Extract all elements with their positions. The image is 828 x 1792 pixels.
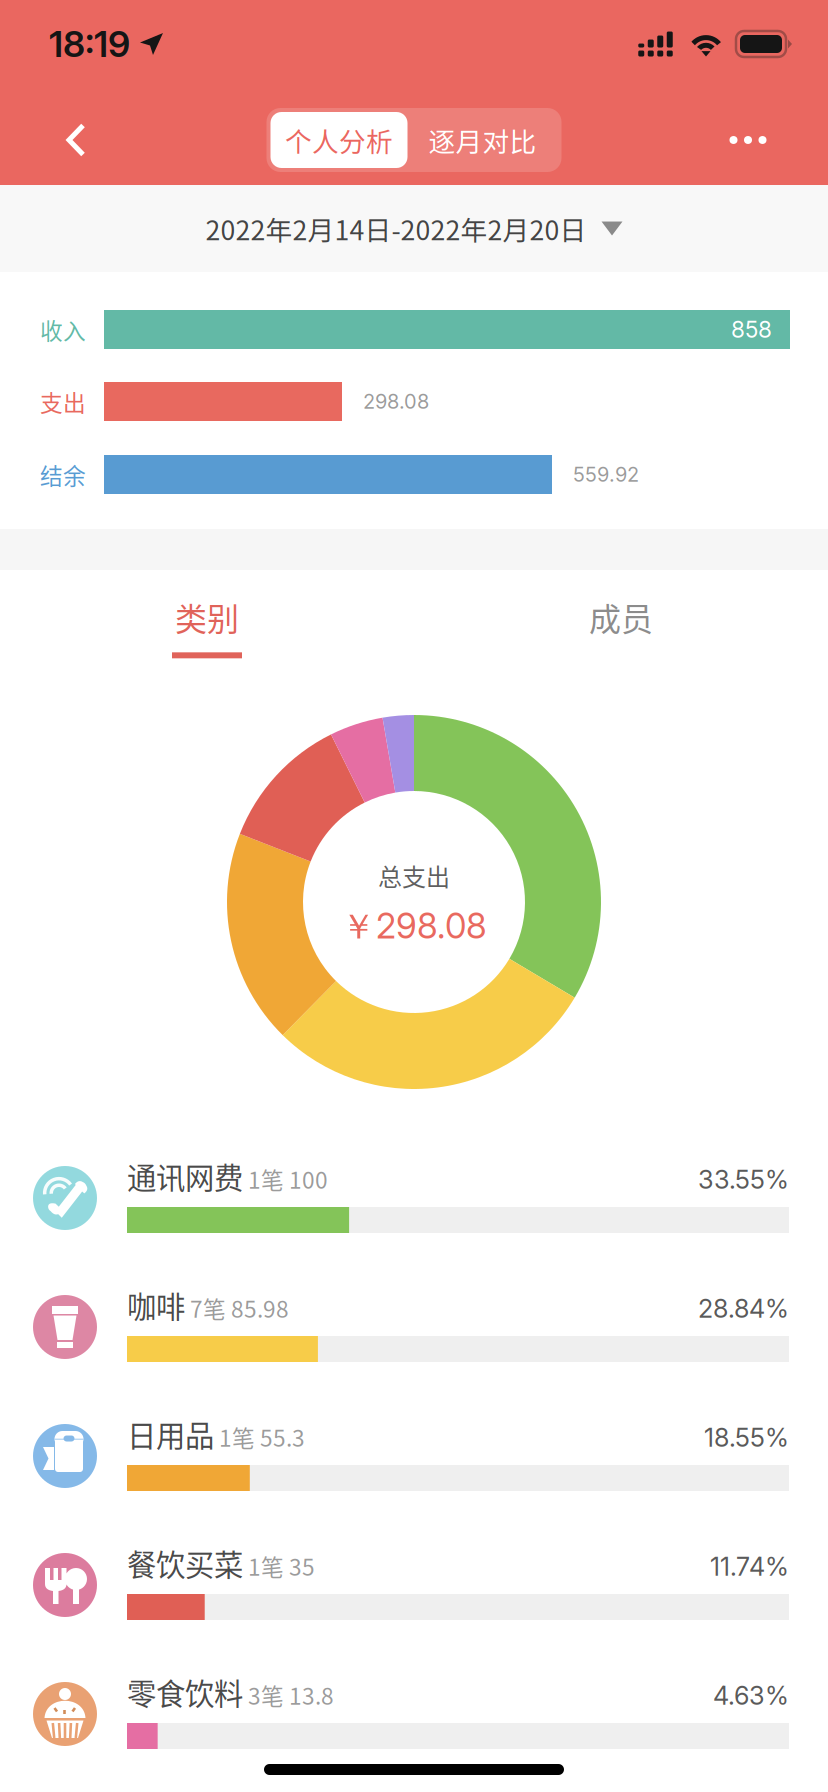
staticText: 298.08 <box>363 389 429 414</box>
staticText: 858 <box>731 316 772 343</box>
staticText: 1笔 55.3 <box>214 1420 305 1453</box>
staticText: 7笔 85.98 <box>185 1291 289 1324</box>
button[interactable]: 咖啡 <box>0 1255 828 1384</box>
staticText: ￥298.08 <box>341 905 487 949</box>
staticText: 通讯网费 <box>127 1155 243 1197</box>
staticText: 2022年2月14日-2022年2月20日 <box>205 209 586 248</box>
staticText: 逐月对比 <box>428 121 536 159</box>
staticText: 11.74% <box>710 1551 789 1582</box>
staticText: 类别 <box>175 594 239 640</box>
button[interactable]: Back <box>0 95 124 185</box>
staticText: 18.55% <box>704 1422 789 1453</box>
staticText: 收入 <box>40 313 86 346</box>
staticText: 咖啡 <box>127 1284 185 1326</box>
staticText: 餐饮买菜 <box>127 1542 243 1584</box>
staticText: 559.92 <box>573 462 639 487</box>
staticText: 支出 <box>40 385 86 418</box>
button[interactable]: 零食饮料 <box>0 1642 828 1771</box>
button[interactable]: 2022年2月14日-2022年2月20日 <box>0 185 828 272</box>
staticText: 33.55% <box>698 1164 789 1195</box>
button[interactable]: 餐饮买菜 <box>0 1513 828 1642</box>
staticText: 4.63% <box>713 1680 789 1711</box>
staticText: 3笔 13.8 <box>243 1678 334 1711</box>
staticText: 结余 <box>40 458 86 491</box>
button[interactable]: 类别 <box>0 570 414 715</box>
button[interactable]: More options <box>700 95 828 185</box>
staticText: 零食饮料 <box>127 1671 243 1713</box>
button[interactable]: 成员 <box>414 570 828 715</box>
staticText: 日用品 <box>127 1413 214 1455</box>
staticText: 成员 <box>589 594 653 640</box>
staticText: 1笔 100 <box>243 1162 328 1195</box>
staticText: 18:19 <box>49 22 130 66</box>
staticText: 总支出 <box>378 858 450 893</box>
button[interactable]: 逐月对比 <box>407 112 557 168</box>
staticText: 1笔 35 <box>243 1549 315 1582</box>
staticText: 28.84% <box>698 1293 789 1324</box>
button[interactable]: 通讯网费 <box>0 1126 828 1255</box>
button[interactable]: 个人分析 <box>270 112 407 168</box>
staticText: 个人分析 <box>285 121 393 159</box>
button[interactable]: 日用品 <box>0 1384 828 1513</box>
